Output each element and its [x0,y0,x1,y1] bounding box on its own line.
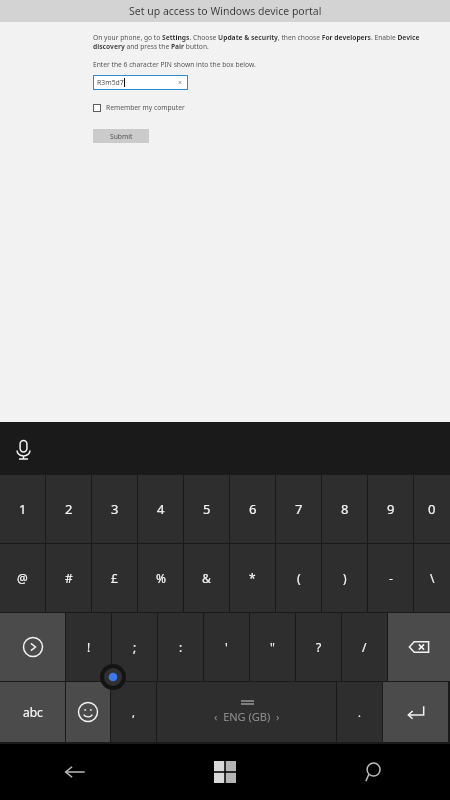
staticText: * [249,570,256,586]
staticText: % [156,570,166,586]
staticText: \ [430,570,435,586]
button[interactable]: ( [276,544,321,612]
staticText: : [179,639,183,655]
button[interactable]: , [111,682,156,742]
button[interactable]: 7 [276,475,321,543]
button[interactable]: 0 [414,475,450,543]
staticText: " [270,639,275,655]
button[interactable]: R3m5d7 [93,75,188,90]
button[interactable]: 8 [322,475,367,543]
button[interactable]: & [184,544,229,612]
staticText: × [178,78,183,88]
staticText: 7 [295,500,303,518]
staticText: £ [111,570,118,586]
staticText: . [358,705,361,720]
staticText: / [362,639,367,655]
button[interactable]: Voice input [9,435,37,463]
button[interactable]: 9 [368,475,413,543]
staticText: ! [87,639,91,655]
button[interactable]: 6 [230,475,275,543]
button[interactable]: Emoji [66,682,110,742]
button[interactable]: Search [300,744,450,800]
staticText: 2 [65,500,73,518]
staticText: 6 [249,500,257,518]
staticText: Submit [110,132,133,141]
staticText: abc [23,704,43,720]
button[interactable]: ' [204,613,249,681]
button[interactable]: " [250,613,295,681]
button[interactable]: 3 [92,475,137,543]
staticText: Enter the 6 character PIN shown into the… [93,60,256,69]
staticText: 5 [203,500,211,518]
button[interactable]: ; [112,613,157,681]
button[interactable]: More symbols [0,613,65,681]
button[interactable]: * [230,544,275,612]
button[interactable]: Space, ENG (GB) [157,682,336,742]
button[interactable]: Back [0,744,150,800]
staticText: 4 [157,500,165,518]
staticText: 9 [387,500,395,518]
button[interactable]: 1 [0,475,45,543]
staticText: Set up access to Windows device portal [129,4,322,18]
button[interactable]: £ [92,544,137,612]
staticText: R3m5d7 [97,78,124,87]
staticText: 0 [428,500,436,518]
button[interactable]: Start [150,744,300,800]
button[interactable]: 5 [184,475,229,543]
button[interactable]: ? [296,613,341,681]
staticText: 1 [19,500,27,518]
staticText: ' [225,639,228,655]
button[interactable]: Submit [93,129,149,143]
button[interactable]: ! [66,613,111,681]
button[interactable]: ) [322,544,367,612]
staticText: ; [133,639,137,655]
staticText: @ [17,570,28,586]
button[interactable]: Remember my computer [93,103,185,112]
staticText: ) [343,570,347,586]
button[interactable]: / [342,613,387,681]
button[interactable]: - [368,544,413,612]
staticText: # [65,570,73,586]
staticText: , [132,705,135,720]
staticText: ? [316,639,322,655]
button[interactable]: 4 [138,475,183,543]
button[interactable]: Backspace [388,613,450,681]
staticText: Remember my computer [106,103,185,112]
staticText: 8 [341,500,349,518]
staticText: 3 [111,500,119,518]
staticText: On your phone, go to Settings. Choose Up… [93,33,440,51]
button[interactable]: @ [0,544,45,612]
button[interactable]: % [138,544,183,612]
button[interactable]: : [158,613,203,681]
button[interactable]: \ [414,544,450,612]
button[interactable]: abc [0,682,65,742]
staticText: ‹ ENG (GB) › [214,709,280,724]
button[interactable]: # [46,544,91,612]
staticText: - [389,570,393,586]
button[interactable]: 2 [46,475,91,543]
button[interactable]: Enter [383,682,448,742]
staticText: ( [297,570,301,586]
staticText: & [202,570,211,586]
button[interactable]: . [337,682,382,742]
